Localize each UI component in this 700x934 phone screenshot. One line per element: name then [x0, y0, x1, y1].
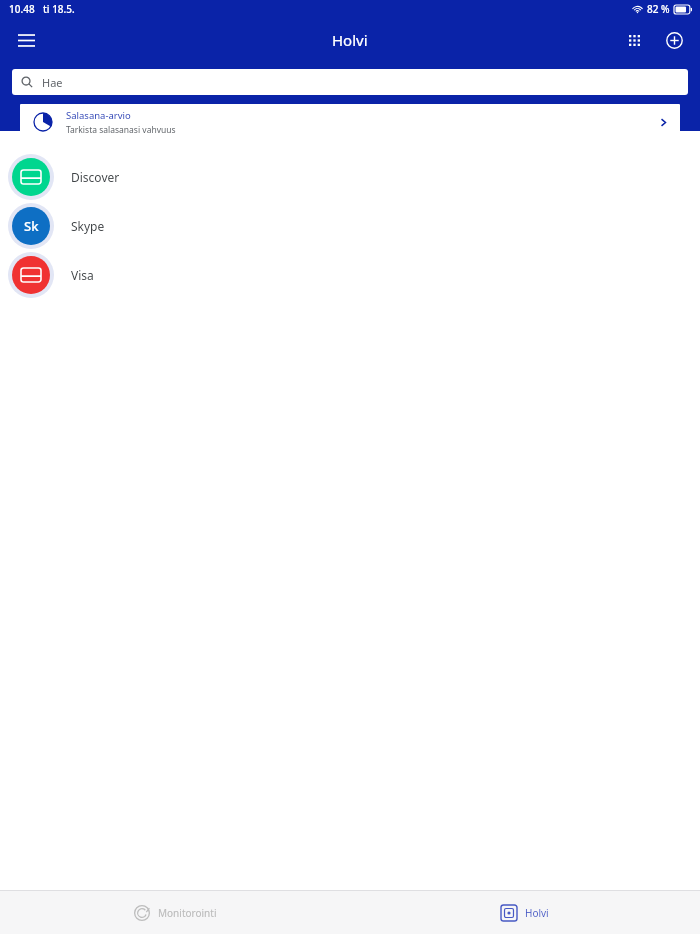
button[interactable]: Holvi [350, 891, 700, 934]
button[interactable]: Sk [0, 201, 700, 250]
button[interactable]: Add [656, 22, 692, 58]
staticText: 10.48 [9, 2, 35, 16]
staticText: 82 % [647, 2, 670, 16]
staticText: Tarkista salasanasi vahvuus [66, 124, 176, 136]
staticText: Visa [71, 267, 94, 283]
staticText: Monitorointi [158, 906, 217, 920]
button[interactable]: Visa [0, 250, 700, 299]
staticText: Salasana-arvio [66, 109, 131, 122]
staticText: Hae [42, 75, 63, 90]
staticText: Sk [24, 217, 39, 235]
staticText: Holvi [525, 906, 549, 920]
button[interactable]: Discover [0, 152, 700, 201]
staticText: Discover [71, 169, 120, 185]
button[interactable]: Menu [6, 20, 46, 60]
button[interactable]: Hae [12, 69, 688, 95]
button[interactable]: Grid view [616, 22, 652, 58]
staticText: Skype [71, 218, 105, 234]
staticText: Holvi [332, 30, 368, 50]
staticText: ti 18.5. [43, 2, 75, 16]
button[interactable]: Monitorointi [0, 891, 350, 934]
button[interactable]: Salasana-arvio [20, 104, 680, 140]
